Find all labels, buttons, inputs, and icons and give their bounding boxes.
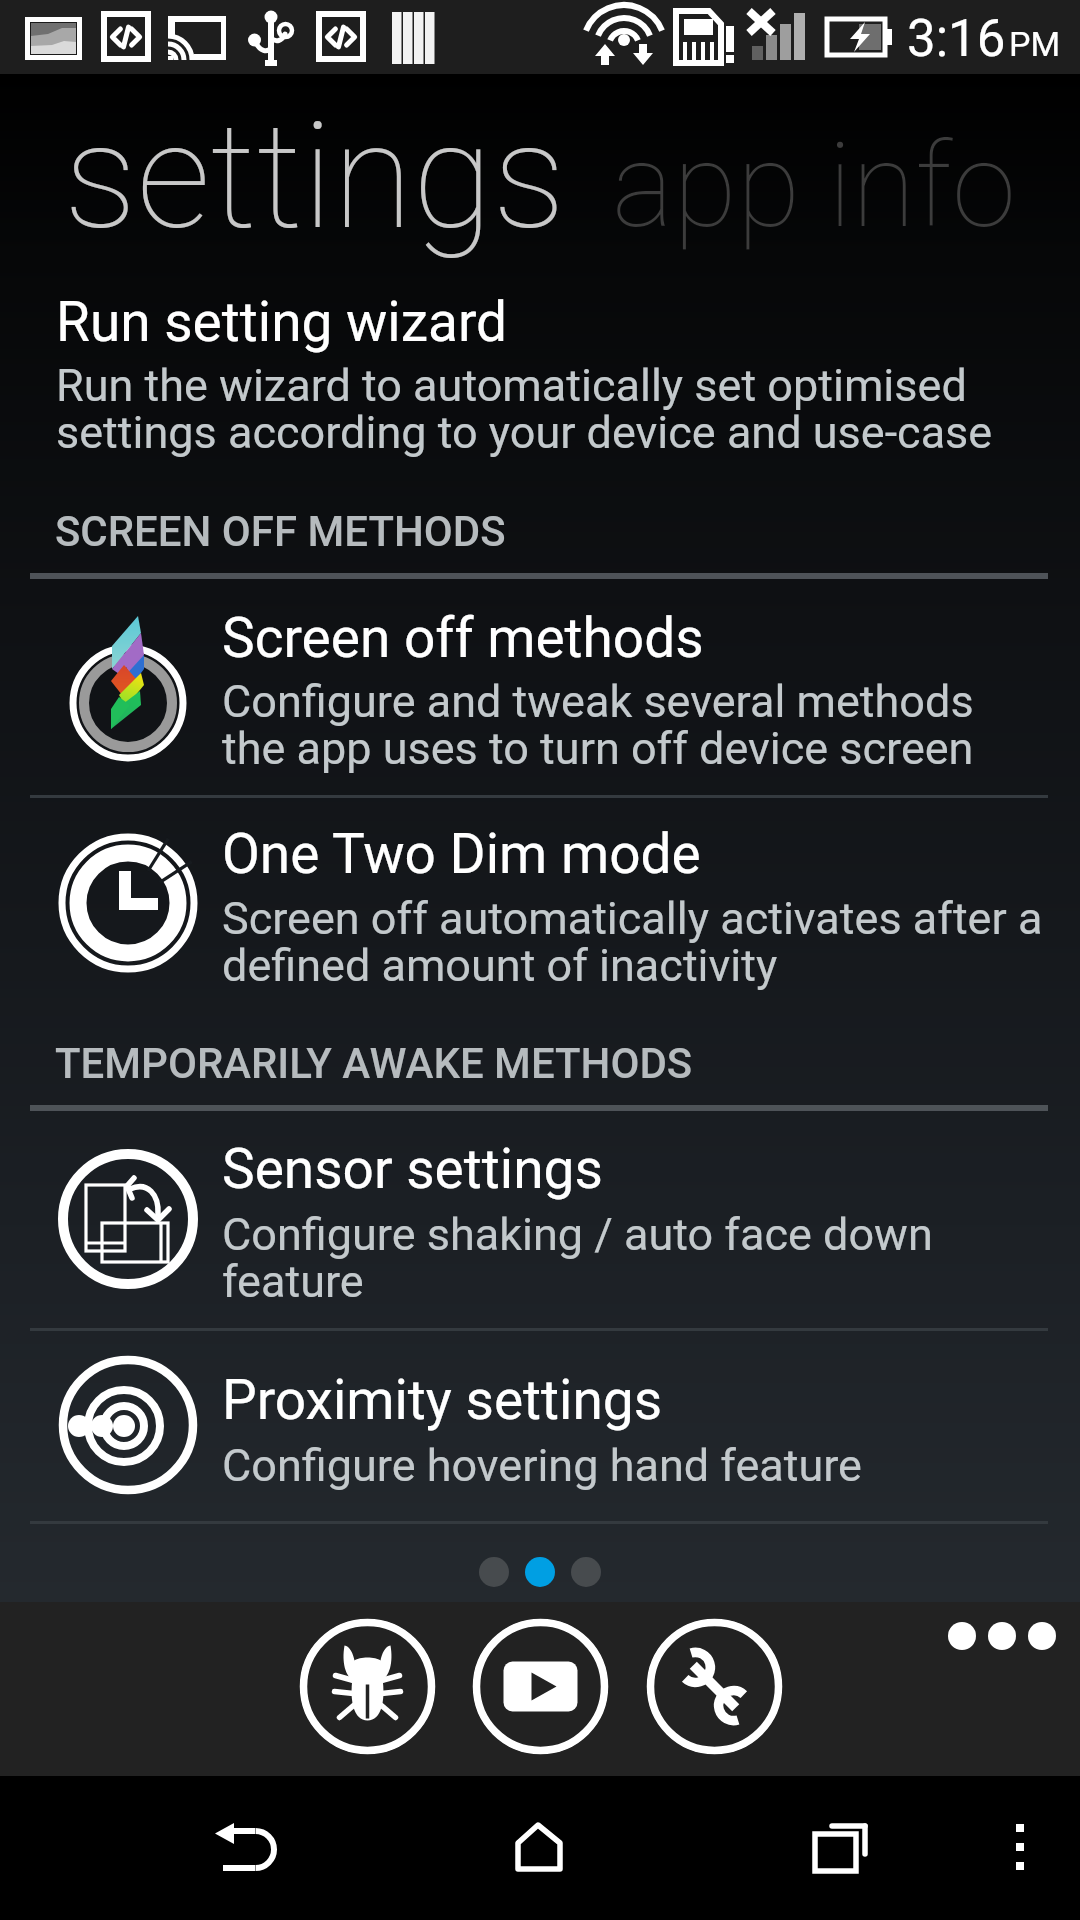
button[interactable]: Home bbox=[508, 1810, 578, 1880]
staticText: PM bbox=[1009, 24, 1061, 64]
staticText: TEMPORARILY AWAKE METHODS bbox=[55, 1039, 693, 1088]
staticText: Screen off automatically activates after… bbox=[222, 892, 1043, 992]
button[interactable] bbox=[571, 1557, 601, 1587]
staticText: One Two Dim mode bbox=[222, 822, 701, 886]
staticText: Run setting wizard bbox=[56, 290, 508, 354]
staticText: Sensor settings bbox=[222, 1137, 603, 1201]
staticText: Configure and tweak several methods the … bbox=[222, 675, 974, 775]
staticText: Configure hovering hand feature bbox=[222, 1439, 862, 1492]
staticText: 3:16 bbox=[907, 9, 1006, 69]
staticText: settings bbox=[64, 92, 566, 263]
staticText: Screen off methods bbox=[222, 606, 704, 670]
staticText: SCREEN OFF METHODS bbox=[55, 507, 506, 556]
button[interactable]: Video tutorial bbox=[472, 1618, 609, 1755]
button[interactable]: Sensor settings bbox=[0, 1111, 1080, 1328]
button[interactable] bbox=[525, 1557, 555, 1587]
staticText: app info bbox=[612, 118, 1016, 254]
button[interactable]: Proximity settings bbox=[0, 1331, 1080, 1522]
button[interactable]: One Two Dim mode bbox=[0, 798, 1080, 1008]
button[interactable] bbox=[479, 1557, 509, 1587]
button[interactable]: Tools bbox=[646, 1618, 783, 1755]
staticText: Proximity settings bbox=[222, 1368, 663, 1432]
button[interactable]: More options bbox=[942, 1622, 1062, 1650]
button[interactable]: Run setting wizard bbox=[0, 272, 1080, 472]
button[interactable]: Recent apps bbox=[805, 1810, 885, 1890]
button[interactable]: Bug report bbox=[299, 1618, 436, 1755]
button[interactable]: More options bbox=[1000, 1808, 1044, 1852]
staticText: Configure shaking / auto face down featu… bbox=[222, 1208, 933, 1308]
button[interactable]: Screen off methods bbox=[0, 579, 1080, 795]
button[interactable]: Back bbox=[200, 1810, 290, 1900]
staticText: Run the wizard to automatically set opti… bbox=[56, 359, 993, 459]
